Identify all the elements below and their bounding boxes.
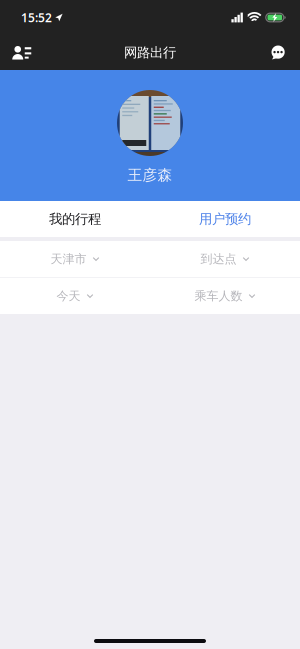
button[interactable]: 到达点	[150, 241, 300, 277]
button[interactable]: 乘车人数	[150, 278, 300, 314]
button[interactable]: Contacts	[0, 35, 44, 70]
staticText: 王彦森	[127, 166, 172, 184]
staticText: 15:52	[21, 9, 52, 25]
button[interactable]: 天津市	[0, 241, 150, 277]
button[interactable]: 今天	[0, 278, 150, 314]
staticText: 网路出行	[124, 44, 176, 61]
staticText: 到达点	[201, 252, 237, 266]
staticText: 乘车人数	[195, 289, 243, 303]
button[interactable]: Messages	[256, 35, 300, 70]
button[interactable]: 用户预约	[150, 201, 300, 237]
button[interactable]: 我的行程	[0, 201, 150, 237]
staticText: 天津市	[51, 252, 87, 266]
staticText: 今天	[57, 289, 81, 303]
staticText: 我的行程	[49, 211, 101, 227]
staticText: 用户预约	[199, 211, 251, 227]
